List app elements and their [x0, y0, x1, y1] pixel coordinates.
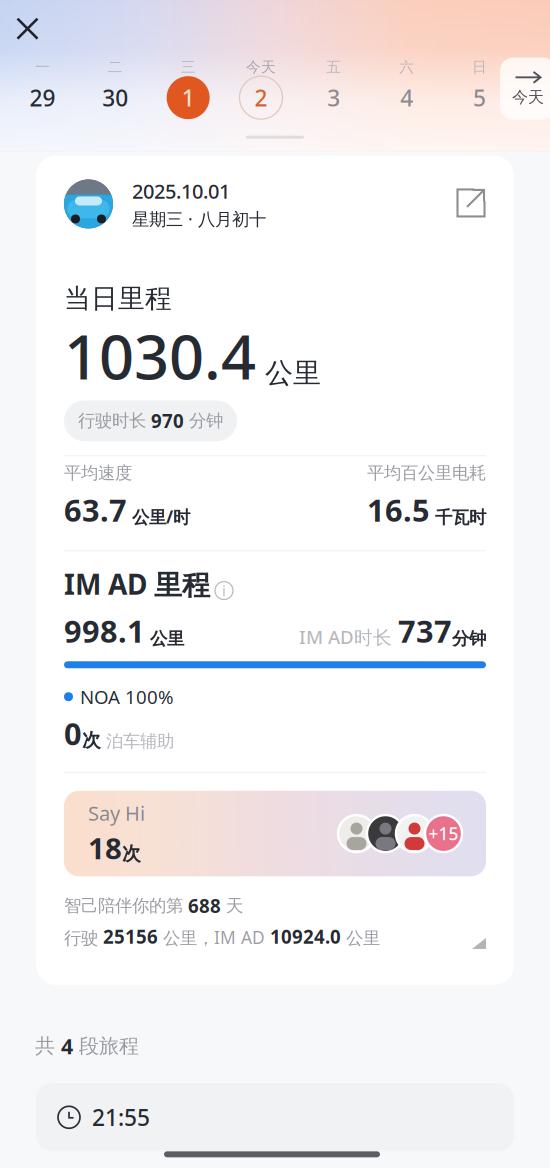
- staticText: 平均百公里电耗: [367, 462, 486, 483]
- staticText: +15: [428, 822, 458, 845]
- staticText: 次: [82, 729, 101, 752]
- button[interactable]: 二: [84, 55, 146, 123]
- staticText: 29: [29, 83, 55, 113]
- staticText: NOA 100%: [80, 684, 174, 709]
- staticText: 公里: [265, 356, 321, 390]
- staticText: 4: [61, 1032, 73, 1060]
- button[interactable]: 三: [157, 55, 219, 123]
- staticText: 五: [326, 58, 341, 76]
- staticText: 平均速度: [64, 462, 132, 483]
- staticText: 天: [221, 895, 243, 916]
- staticText: 次: [122, 842, 141, 865]
- staticText: 共: [35, 1034, 61, 1058]
- staticText: 737: [398, 611, 452, 651]
- staticText: 21:55: [92, 1102, 150, 1132]
- staticText: 2: [254, 83, 267, 113]
- staticText: 二: [108, 58, 123, 76]
- staticText: 段旅程: [73, 1034, 139, 1058]
- staticText: 分钟: [452, 628, 486, 649]
- staticText: 970: [151, 408, 184, 433]
- staticText: 千瓦时: [435, 507, 486, 528]
- staticText: 30: [102, 83, 128, 113]
- staticText: 公里: [341, 928, 380, 949]
- staticText: 六: [399, 58, 414, 76]
- staticText: 16.5: [367, 489, 430, 530]
- button[interactable]: 日: [449, 55, 511, 123]
- staticText: 5: [473, 83, 486, 113]
- staticText: 10924.0: [270, 924, 341, 949]
- staticText: 63.7: [64, 489, 127, 530]
- button[interactable]: Say Hi: [64, 791, 486, 876]
- button[interactable]: 21:55: [0, 1083, 550, 1151]
- staticText: 公里/时: [132, 505, 190, 528]
- staticText: 25156: [103, 924, 158, 949]
- button[interactable]: 六: [376, 55, 438, 123]
- staticText: 智己陪伴你的第: [64, 895, 188, 916]
- staticText: 一: [35, 58, 50, 76]
- staticText: 998.1: [64, 611, 145, 651]
- staticText: 4: [400, 83, 413, 113]
- staticText: 今天: [512, 87, 544, 107]
- staticText: 分钟: [184, 410, 223, 431]
- staticText: 日: [472, 58, 487, 76]
- button[interactable]: 今天: [230, 55, 292, 123]
- button[interactable]: Close: [5, 7, 49, 51]
- staticText: 3: [327, 83, 340, 113]
- staticText: 今天: [246, 58, 276, 76]
- staticText: IM AD 里程: [64, 565, 210, 602]
- staticText: 星期三 · 八月初十: [132, 207, 266, 230]
- button[interactable]: 今天: [500, 58, 550, 120]
- staticText: 公里: [145, 628, 184, 649]
- button[interactable]: 五: [303, 55, 365, 123]
- staticText: 三: [181, 58, 196, 76]
- staticText: 行驶: [64, 928, 103, 949]
- staticText: 1: [182, 83, 195, 113]
- staticText: i: [222, 581, 226, 600]
- staticText: Say Hi: [88, 800, 145, 826]
- staticText: 18: [88, 828, 122, 867]
- staticText: 当日里程: [64, 282, 172, 315]
- staticText: 0: [64, 713, 82, 754]
- staticText: 688: [188, 893, 221, 918]
- staticText: 公里，IM AD: [158, 926, 270, 949]
- staticText: 2025.10.01: [132, 178, 230, 204]
- staticText: 1030.4: [64, 315, 256, 396]
- staticText: 泊车辅助: [101, 730, 174, 752]
- staticText: 行驶时长: [78, 410, 151, 431]
- button[interactable]: 一: [11, 55, 73, 123]
- staticText: IM AD时长: [299, 624, 398, 649]
- button[interactable]: Share: [456, 188, 486, 218]
